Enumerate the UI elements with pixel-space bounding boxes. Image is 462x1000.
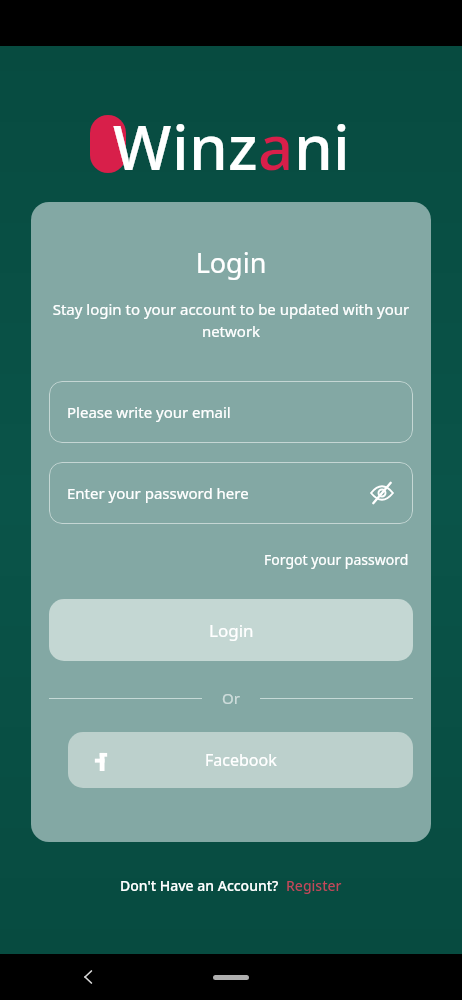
button[interactable]: Please write your email <box>49 381 413 443</box>
staticText: z <box>228 104 258 180</box>
button[interactable]: Show password <box>367 478 397 508</box>
staticText: Login <box>31 244 431 281</box>
staticText: Please write your email <box>67 402 231 422</box>
button[interactable]: Enter your password here <box>49 462 413 524</box>
staticText: n <box>189 104 228 180</box>
staticText: W <box>113 104 172 180</box>
staticText: i <box>172 104 189 180</box>
staticText: i <box>333 104 350 180</box>
staticText: Register <box>286 876 342 895</box>
staticText: n <box>294 104 333 180</box>
button[interactable]: Forgot your password <box>260 546 413 573</box>
staticText: Forgot your password <box>264 550 409 569</box>
button[interactable]: Back <box>72 960 106 994</box>
staticText: Facebook <box>205 749 277 771</box>
button[interactable]: Login <box>49 599 413 661</box>
staticText: Login <box>209 619 254 642</box>
staticText: Don't Have an Account? <box>120 876 279 895</box>
staticText: Enter your password here <box>67 483 249 503</box>
button[interactable]: Register <box>279 876 342 895</box>
staticText: Or <box>222 688 240 708</box>
staticText: Stay login to your account to be updated… <box>51 299 411 342</box>
staticText: a <box>258 104 294 180</box>
button[interactable]: Facebook <box>68 732 413 788</box>
